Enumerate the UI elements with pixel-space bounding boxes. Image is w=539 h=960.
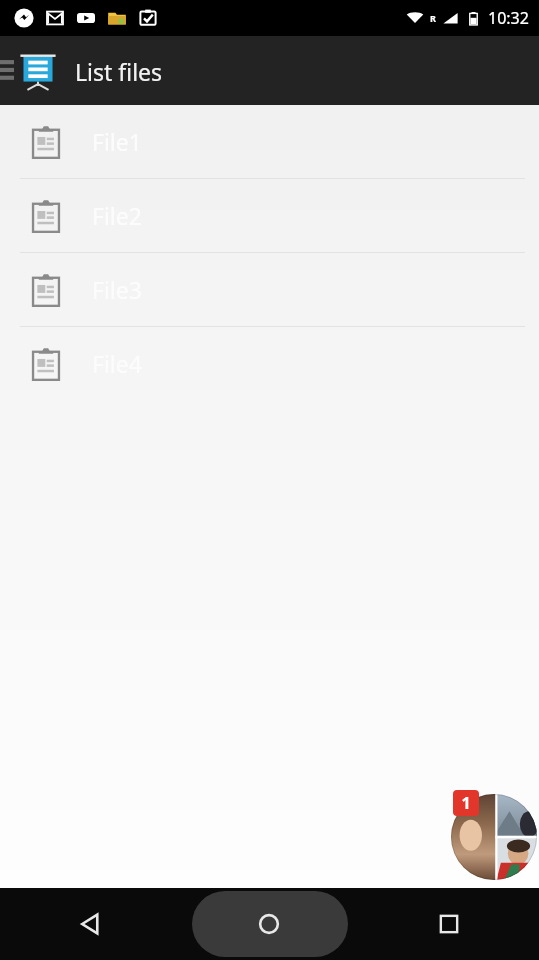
button[interactable]: File3 xyxy=(0,253,539,327)
button[interactable]: Back xyxy=(0,888,179,960)
staticText: File1 xyxy=(92,126,142,157)
staticText: File2 xyxy=(92,200,142,231)
button[interactable]: File2 xyxy=(0,179,539,253)
staticText: List files xyxy=(75,56,163,87)
button[interactable]: Open navigation drawer xyxy=(0,58,14,84)
staticText: 1 xyxy=(461,792,471,814)
button[interactable]: Recent apps xyxy=(359,888,539,960)
button[interactable]: List files xyxy=(16,49,163,93)
staticText: R xyxy=(430,12,436,24)
button[interactable]: File1 xyxy=(0,105,539,179)
button[interactable]: Home xyxy=(179,888,359,960)
staticText: 10:32 xyxy=(488,7,529,29)
button[interactable]: File4 xyxy=(0,327,539,400)
button[interactable]: Chat bubble, 1 unread message xyxy=(445,788,537,880)
